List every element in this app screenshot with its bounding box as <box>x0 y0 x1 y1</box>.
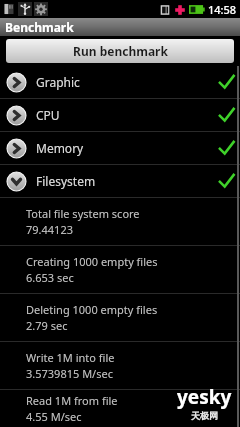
button[interactable]: Creating 1000 empty files <box>0 246 240 293</box>
staticText: Creating 1000 empty files <box>26 254 158 269</box>
staticText: CPU <box>36 107 60 123</box>
button[interactable]: Deleting 1000 empty files <box>0 294 240 341</box>
staticText: Benchmark <box>5 19 74 35</box>
other: Completed <box>219 108 234 123</box>
staticText: Read 1M from file <box>26 393 118 408</box>
staticText: Memory <box>36 140 84 156</box>
button[interactable]: Memory <box>0 132 240 164</box>
staticText: 3.5739815 M/sec <box>26 366 113 381</box>
button[interactable]: Write 1M into file <box>0 342 240 389</box>
staticText: 4.55 M/sec <box>26 409 82 424</box>
staticText: 6.653 sec <box>26 270 74 285</box>
staticText: Filesystem <box>36 173 96 189</box>
button[interactable]: Read 1M from file <box>0 390 240 427</box>
button[interactable]: Filesystem <box>0 165 240 197</box>
button[interactable]: Total file system score <box>0 198 240 245</box>
button[interactable]: Graphic <box>0 66 240 98</box>
staticText: 天极网 <box>191 410 218 421</box>
other: Completed <box>219 141 234 156</box>
staticText: Graphic <box>36 74 80 90</box>
button[interactable]: Run benchmark <box>6 39 234 63</box>
staticText: Write 1M into file <box>26 350 115 365</box>
button[interactable]: CPU <box>0 99 240 131</box>
staticText: 79.44123 <box>26 222 73 237</box>
staticText: Total file system score <box>26 206 140 221</box>
staticText: 14:58 <box>208 2 237 17</box>
staticText: Deleting 1000 empty files <box>26 302 158 317</box>
other: Completed <box>219 75 234 90</box>
staticText: yesky <box>177 384 232 410</box>
staticText: 2.79 sec <box>26 318 68 333</box>
staticText: Run benchmark <box>73 43 168 59</box>
other: Completed <box>219 174 234 189</box>
